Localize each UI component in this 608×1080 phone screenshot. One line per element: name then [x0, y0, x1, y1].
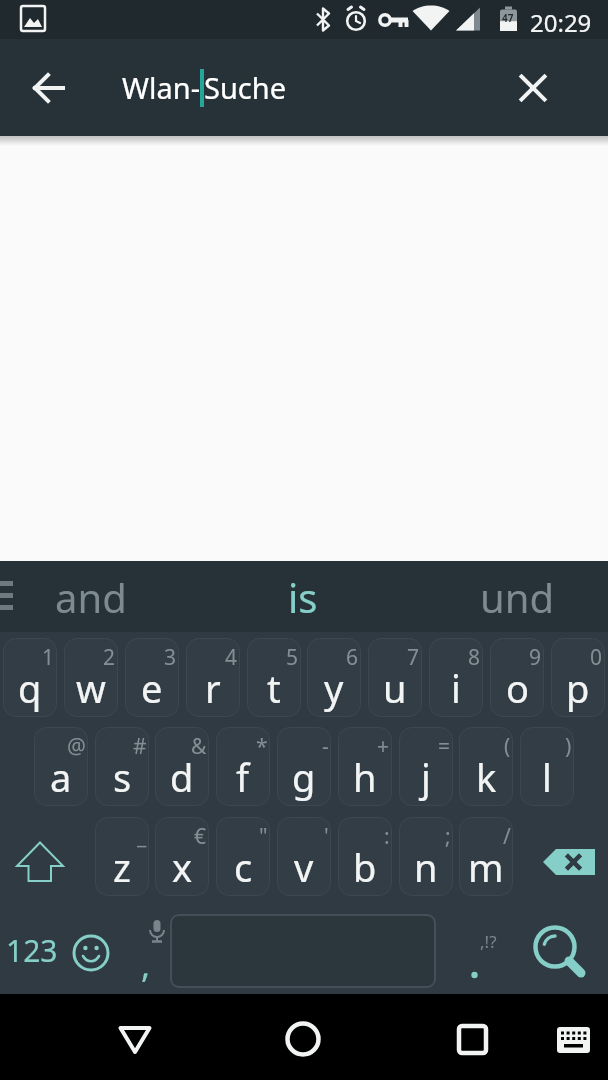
button[interactable]: v [277, 817, 331, 896]
staticText: @ [67, 732, 86, 761]
button[interactable] [170, 914, 436, 988]
staticText: Wlan- [122, 68, 200, 107]
button[interactable]: c [216, 817, 270, 896]
staticText: w [76, 662, 106, 714]
staticText: f [236, 751, 250, 803]
staticText: y [324, 662, 344, 714]
staticText: n [414, 841, 438, 893]
button[interactable]: g [277, 727, 331, 806]
staticText: ) [565, 732, 572, 761]
staticText: d [170, 751, 194, 803]
staticText: u [383, 662, 407, 714]
staticText: + [377, 732, 390, 761]
button[interactable]: a [34, 727, 88, 806]
button[interactable]: f [216, 727, 270, 806]
staticText: p [566, 662, 590, 714]
staticText: is [288, 570, 318, 624]
staticText: h [353, 751, 377, 803]
button[interactable]: ,!? [440, 914, 510, 988]
staticText: und [480, 570, 555, 624]
staticText: 123 [6, 930, 58, 971]
button[interactable]: b [338, 817, 392, 896]
button[interactable]: e [125, 638, 179, 717]
staticText: k [476, 751, 497, 803]
button[interactable]: r [186, 638, 240, 717]
button[interactable]: und [426, 561, 608, 632]
staticText: c [234, 841, 253, 893]
staticText: € [194, 822, 207, 851]
staticText: and [55, 570, 127, 624]
staticText: 8 [468, 643, 481, 672]
staticText: , [141, 942, 151, 988]
staticText: q [18, 662, 42, 714]
button[interactable]: n [399, 817, 453, 896]
button[interactable]: s [95, 727, 149, 806]
button[interactable] [103, 1014, 167, 1078]
staticText: l [542, 751, 552, 803]
staticText: ( [504, 732, 511, 761]
button[interactable]: y [307, 638, 361, 717]
staticText: b [353, 841, 377, 893]
button[interactable] [25, 64, 73, 112]
button[interactable]: and [0, 561, 182, 632]
staticText: m [468, 841, 504, 893]
button[interactable] [549, 1027, 597, 1067]
button[interactable]: 123 [4, 914, 60, 986]
staticText: / [503, 822, 511, 851]
button[interactable] [509, 64, 557, 112]
button[interactable]: h [338, 727, 392, 806]
button[interactable]: t [247, 638, 301, 717]
staticText: Suche [204, 68, 287, 107]
button[interactable]: q [3, 638, 57, 717]
staticText: ; [445, 822, 451, 851]
staticText: o [506, 662, 529, 714]
button[interactable]: j [399, 727, 453, 806]
button[interactable] [5, 822, 80, 892]
button[interactable]: u [368, 638, 422, 717]
button[interactable]: is [202, 561, 404, 632]
button[interactable]: x [155, 817, 209, 896]
staticText: 9 [529, 643, 542, 672]
staticText: z [113, 841, 131, 893]
staticText: # [133, 732, 147, 761]
staticText: * [256, 732, 268, 761]
button[interactable]: o [490, 638, 544, 717]
staticText: j [421, 751, 431, 803]
staticText: 20:29 [530, 6, 592, 39]
staticText: e [141, 662, 163, 714]
button[interactable] [524, 914, 594, 988]
staticText: " [259, 822, 268, 851]
staticText: s [113, 751, 132, 803]
staticText: ' [324, 822, 329, 851]
staticText: 1 [42, 643, 55, 672]
staticText: ,!? [480, 930, 497, 953]
button[interactable]: d [155, 727, 209, 806]
staticText: _ [137, 822, 147, 851]
staticText: 6 [346, 643, 359, 672]
staticText: 3 [164, 643, 177, 672]
staticText: & [191, 732, 207, 761]
button[interactable]: m [459, 817, 513, 896]
button[interactable]: z [95, 817, 149, 896]
staticText: g [292, 751, 316, 803]
button[interactable]: k [459, 727, 513, 806]
button[interactable]: , [122, 914, 182, 988]
button[interactable] [440, 1014, 504, 1078]
staticText: 47 [502, 11, 514, 25]
staticText: x [172, 841, 193, 893]
staticText: v [294, 841, 314, 893]
button[interactable] [68, 917, 114, 983]
staticText: = [438, 732, 451, 761]
button[interactable]: w [64, 638, 118, 717]
button[interactable] [530, 817, 608, 896]
button[interactable]: i [429, 638, 483, 717]
button[interactable]: l [520, 727, 574, 806]
button[interactable] [271, 1014, 335, 1078]
button[interactable]: p [551, 638, 605, 717]
staticText: - [322, 732, 329, 761]
staticText: 0 [590, 643, 603, 672]
staticText: 5 [286, 643, 299, 672]
staticText: i [451, 662, 461, 714]
staticText: 4 [225, 643, 238, 672]
staticText: a [50, 751, 72, 803]
